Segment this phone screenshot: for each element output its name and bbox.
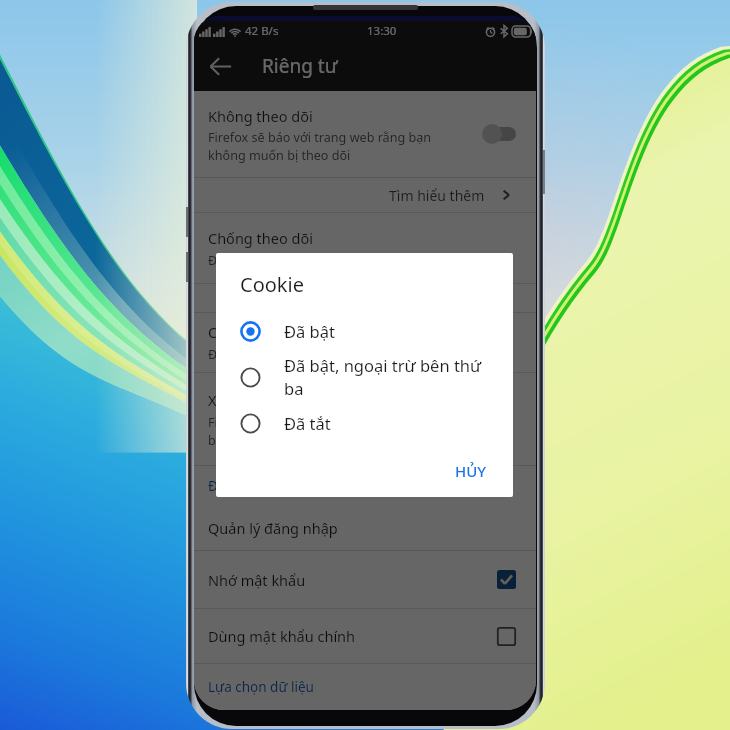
- staticText: Đã bật: [284, 320, 335, 342]
- staticText: 13:30: [367, 23, 397, 39]
- button[interactable]: Do not track toggle: [482, 124, 516, 144]
- staticText: Đăng nhập: [208, 477, 279, 495]
- staticText: Đã tắt: [284, 412, 331, 434]
- staticText: Đã bật, ngoại trừ bên thứ ba: [284, 354, 503, 400]
- button[interactable]: Tìm hiểu thêm: [194, 284, 536, 312]
- button[interactable]: Cookie: [194, 313, 536, 372]
- button[interactable]: Đã tắt: [216, 406, 513, 440]
- staticText: Đã bật chế độ duyệt web riêng tư: [208, 252, 406, 269]
- staticText: Cookie: [208, 322, 255, 342]
- staticText: Cookie: [240, 271, 304, 298]
- staticText: HỦY: [455, 461, 487, 481]
- staticText: Nhớ mật khẩu: [208, 570, 497, 590]
- staticText: Đã bật: [208, 346, 247, 363]
- button[interactable]: Quản lý đăng nhập: [194, 506, 536, 550]
- button[interactable]: Back: [202, 48, 238, 84]
- staticText: Firefox sẽ xóa dữ liệu riêng tư của bạn …: [208, 414, 476, 448]
- button[interactable]: Xóa dữ liệu riêng tư: [194, 373, 536, 465]
- button[interactable]: Nhớ mật khẩu: [194, 551, 536, 608]
- button[interactable]: Dùng mật khẩu chính: [194, 609, 536, 663]
- staticText: Tìm hiểu thêm: [389, 186, 485, 205]
- button[interactable]: Chống theo dõi: [194, 213, 536, 283]
- button[interactable]: Không theo dõi: [194, 91, 536, 177]
- button[interactable]: HỦY: [447, 455, 495, 487]
- staticText: Lựa chọn dữ liệu: [208, 678, 314, 696]
- button[interactable]: Tìm hiểu thêm: [194, 178, 536, 212]
- staticText: Không theo dõi: [208, 106, 313, 126]
- button[interactable]: Đã bật, ngoại trừ bên thứ ba: [216, 348, 513, 406]
- button[interactable]: Đã bật: [216, 314, 513, 348]
- staticText: Riêng tư: [262, 53, 338, 79]
- staticText: 42 B/s: [245, 23, 279, 39]
- staticText: Xóa dữ liệu riêng tư: [208, 390, 343, 410]
- button[interactable]: Unchecked: [497, 627, 516, 646]
- button[interactable]: Checked: [497, 570, 516, 589]
- staticText: Dùng mật khẩu chính: [208, 626, 497, 646]
- staticText: Chống theo dõi: [208, 228, 313, 248]
- staticText: Quản lý đăng nhập: [208, 518, 338, 538]
- staticText: Firefox sẽ báo với trang web rằng bạn kh…: [208, 129, 452, 163]
